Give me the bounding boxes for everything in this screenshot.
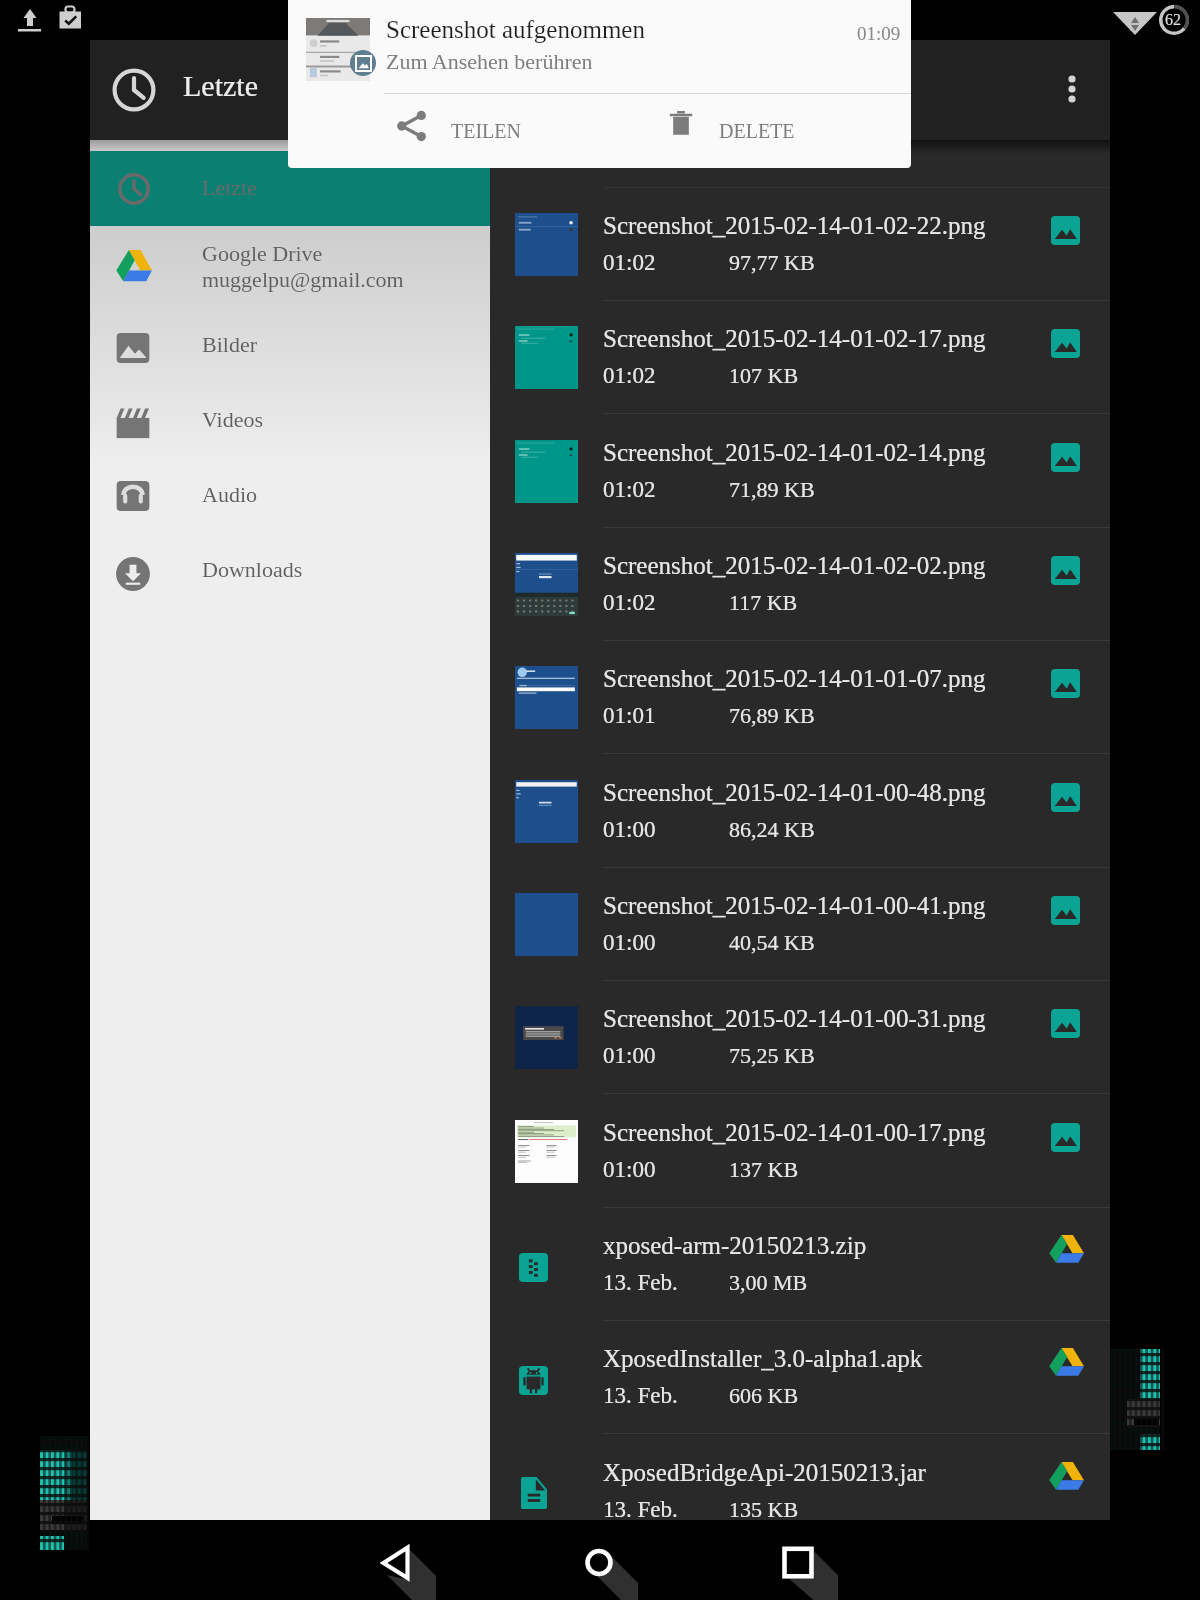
button[interactable]: Back (356, 1520, 436, 1600)
staticText: 01:01 (603, 703, 656, 728)
button[interactable]: Screenshot_2015-02-14-01-00-41.png (490, 868, 1110, 981)
button[interactable]: Downloads (90, 533, 490, 608)
button[interactable]: DELETE (657, 94, 911, 156)
staticText: 107 KB (729, 363, 799, 387)
staticText: Letzte (202, 175, 257, 199)
staticText: TEILEN (451, 120, 521, 142)
staticText: Audio (202, 482, 257, 506)
button[interactable]: TEILEN (384, 94, 657, 156)
staticText: 117 KB (729, 590, 798, 614)
staticText: Screenshot_2015-02-14-01-00-17.png (603, 1119, 986, 1147)
staticText: Screenshot_2015-02-14-01-02-22.png (603, 212, 986, 240)
staticText: 13. Feb. (603, 1383, 678, 1408)
staticText: Screenshot_2015-02-14-01-00-48.png (603, 779, 986, 807)
staticText: Screenshot_2015-02-14-01-00-41.png (603, 892, 986, 920)
staticText: 13. Feb. (603, 1270, 678, 1295)
button[interactable]: Recent apps (758, 1520, 838, 1600)
staticText: Downloads (202, 557, 303, 581)
staticText: 01:00 (603, 1043, 656, 1068)
staticText: 40,54 KB (729, 930, 815, 954)
staticText: XposedInstaller_3.0-alpha1.apk (603, 1345, 923, 1373)
button[interactable]: More options (1026, 40, 1110, 140)
staticText: 606 KB (729, 1383, 799, 1407)
button[interactable]: Home (558, 1520, 638, 1600)
button[interactable]: Letzte (90, 151, 490, 226)
staticText: 01:02 (603, 477, 656, 502)
staticText: 62 (1165, 11, 1181, 29)
staticText: Zum Ansehen berühren (386, 49, 593, 73)
staticText: 86,24 KB (729, 817, 815, 841)
button[interactable]: XposedBridgeApi-20150213.jar (490, 1435, 1110, 1548)
button[interactable]: Screenshot_2015-02-14-01-01-07.png (490, 641, 1110, 754)
button[interactable]: Google Drive (90, 226, 490, 305)
staticText: Screenshot_2015-02-14-01-02-14.png (603, 439, 986, 467)
button[interactable]: Screenshot_2015-02-14-01-00-31.png (490, 981, 1110, 1094)
staticText: DELETE (719, 120, 795, 142)
staticText: 01:02 (603, 363, 656, 388)
staticText: Letzte (183, 69, 258, 102)
staticText: 135 KB (729, 1497, 799, 1521)
staticText: 01:02 (603, 250, 656, 275)
staticText: 76,89 KB (729, 703, 815, 727)
button[interactable]: XposedInstaller_3.0-alpha1.apk (490, 1321, 1110, 1434)
button[interactable]: Screenshot_2015-02-14-01-00-48.png (490, 755, 1110, 868)
button[interactable]: Open navigation drawer (90, 40, 178, 140)
staticText: Screenshot_2015-02-14-01-01-07.png (603, 665, 986, 693)
staticText: 97,77 KB (729, 250, 815, 274)
staticText: 01:00 (603, 930, 656, 955)
staticText: 71,89 KB (729, 477, 815, 501)
staticText: 137 KB (729, 1157, 799, 1181)
staticText: Screenshot_2015-02-14-01-02-02.png (603, 552, 986, 580)
staticText: 13. Feb. (603, 1497, 678, 1522)
staticText: Google Drive (202, 241, 323, 265)
staticText: 01:02 (603, 590, 656, 615)
staticText: xposed-arm-20150213.zip (603, 1232, 867, 1260)
staticText: muggelpu@gmail.com (202, 267, 404, 291)
button[interactable]: Screenshot_2015-02-14-01-02-22.png (490, 188, 1110, 301)
button[interactable]: Screenshot_2015-02-14-01-02-14.png (490, 415, 1110, 528)
button[interactable]: Screenshot_2015-02-14-01-02-02.png (490, 528, 1110, 641)
staticText: Bilder (202, 332, 257, 356)
staticText: 01:09 (857, 23, 901, 44)
button[interactable]: Screenshot_2015-02-14-01-02-17.png (490, 301, 1110, 414)
button[interactable]: Screenshot_2015-02-14-01-00-17.png (490, 1095, 1110, 1208)
staticText: 75,25 KB (729, 1043, 815, 1067)
button[interactable]: Bilder (90, 308, 490, 383)
staticText: 01:00 (603, 1157, 656, 1182)
staticText: Screenshot_2015-02-14-01-00-31.png (603, 1005, 986, 1033)
staticText: 01:00 (603, 817, 656, 842)
staticText: Videos (202, 407, 264, 431)
button[interactable]: Audio (90, 458, 490, 533)
staticText: 3,00 MB (729, 1270, 808, 1294)
staticText: Screenshot aufgenommen (386, 16, 645, 44)
button[interactable]: Videos (90, 383, 490, 458)
button[interactable]: Screenshot aufgenommen (288, 0, 911, 105)
button[interactable]: xposed-arm-20150213.zip (490, 1208, 1110, 1321)
staticText: Screenshot_2015-02-14-01-02-17.png (603, 325, 986, 353)
staticText: XposedBridgeApi-20150213.jar (603, 1459, 926, 1487)
